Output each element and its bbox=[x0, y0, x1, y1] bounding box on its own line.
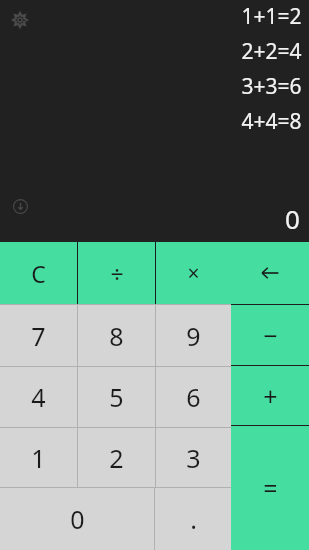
staticText: + bbox=[263, 379, 278, 413]
staticText: 3+3=6 bbox=[241, 72, 302, 101]
button[interactable]: ÷ bbox=[78, 242, 155, 304]
staticText: × bbox=[187, 259, 200, 288]
button[interactable]: C bbox=[0, 242, 77, 304]
button[interactable]: 4 bbox=[0, 367, 77, 427]
button[interactable]: × bbox=[156, 242, 231, 304]
button[interactable]: 6 bbox=[156, 367, 231, 427]
staticText: 2+2=4 bbox=[241, 37, 302, 66]
staticText: 5 bbox=[109, 380, 124, 414]
staticText: C bbox=[31, 258, 46, 289]
staticText: 3 bbox=[186, 441, 201, 475]
staticText: 7 bbox=[31, 319, 46, 353]
staticText: ÷ bbox=[110, 258, 124, 289]
button[interactable]: Backspace bbox=[231, 242, 309, 304]
button[interactable]: = bbox=[231, 426, 309, 550]
staticText: 8 bbox=[109, 319, 124, 353]
button[interactable]: 7 bbox=[0, 305, 77, 366]
button[interactable]: − bbox=[231, 305, 309, 365]
button[interactable]: . bbox=[155, 488, 231, 550]
staticText: 9 bbox=[186, 319, 201, 353]
staticText: . bbox=[190, 502, 197, 536]
staticText: 2 bbox=[109, 441, 124, 475]
button[interactable]: 9 bbox=[156, 305, 231, 366]
staticText: 0 bbox=[70, 502, 85, 536]
staticText: 1 bbox=[31, 441, 46, 475]
button[interactable]: 5 bbox=[78, 367, 155, 427]
staticText: 1+1=2 bbox=[241, 2, 302, 31]
staticText: = bbox=[263, 471, 278, 505]
staticText: 6 bbox=[186, 380, 201, 414]
button[interactable]: History bbox=[6, 192, 34, 220]
button[interactable]: 3 bbox=[156, 428, 231, 487]
staticText: 4+4=8 bbox=[241, 107, 302, 136]
button[interactable]: 8 bbox=[78, 305, 155, 366]
staticText: 0 bbox=[285, 201, 300, 236]
button[interactable]: Settings bbox=[6, 6, 34, 34]
button[interactable]: 2 bbox=[78, 428, 155, 487]
staticText: − bbox=[263, 318, 278, 352]
button[interactable]: + bbox=[231, 366, 309, 425]
button[interactable]: 0 bbox=[0, 488, 154, 550]
button[interactable]: 1 bbox=[0, 428, 77, 487]
staticText: 4 bbox=[31, 380, 46, 414]
